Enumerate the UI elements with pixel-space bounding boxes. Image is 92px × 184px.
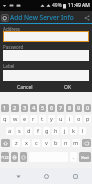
staticText: Next bbox=[81, 155, 89, 160]
staticText: w bbox=[13, 115, 18, 123]
button[interactable]: 7 bbox=[57, 104, 64, 112]
button[interactable]: p bbox=[84, 115, 91, 123]
button[interactable]: o bbox=[75, 115, 82, 123]
button[interactable]: s bbox=[16, 127, 23, 135]
staticText: 8 bbox=[68, 104, 72, 112]
staticText: 0 bbox=[86, 104, 90, 112]
staticText: y bbox=[50, 115, 53, 123]
staticText: Cancel bbox=[17, 84, 33, 91]
button[interactable]: Recents bbox=[64, 168, 86, 184]
button[interactable]: Home bbox=[35, 168, 57, 184]
staticText: OK bbox=[64, 84, 72, 91]
staticText: j bbox=[64, 127, 66, 135]
staticText: 49% bbox=[52, 2, 62, 9]
button[interactable]: 1 bbox=[1, 104, 9, 112]
staticText: i bbox=[69, 115, 71, 123]
button[interactable]: w bbox=[11, 115, 19, 123]
button[interactable]: 8 bbox=[66, 104, 73, 112]
button[interactable]: z bbox=[12, 139, 20, 147]
button[interactable]: g bbox=[43, 127, 50, 135]
button[interactable]: Share bbox=[82, 11, 92, 24]
button[interactable]: Back bbox=[7, 168, 29, 184]
button[interactable]: b bbox=[52, 139, 60, 147]
staticText: e bbox=[23, 115, 27, 123]
button[interactable]: Change language bbox=[11, 152, 18, 162]
button[interactable]: 9 bbox=[75, 104, 82, 112]
button[interactable]: 4 bbox=[30, 104, 37, 112]
button[interactable]: Back bbox=[0, 11, 10, 24]
staticText: 1 bbox=[3, 104, 7, 112]
button[interactable]: c bbox=[32, 139, 40, 147]
button[interactable]: k bbox=[70, 127, 77, 135]
staticText: k bbox=[72, 127, 75, 135]
button[interactable]: r bbox=[30, 115, 37, 123]
button[interactable]: 5 bbox=[39, 104, 46, 112]
button[interactable]: f bbox=[34, 127, 41, 135]
button[interactable]: l bbox=[79, 127, 86, 135]
staticText: g bbox=[45, 127, 49, 135]
staticText: s bbox=[18, 127, 21, 135]
staticText: d bbox=[27, 127, 31, 135]
button[interactable]: Backspace bbox=[82, 139, 91, 147]
staticText: 11:49 AM bbox=[68, 2, 90, 9]
staticText: f bbox=[37, 127, 39, 135]
button[interactable]: Cancel bbox=[3, 83, 46, 92]
staticText: a bbox=[8, 127, 12, 135]
staticText: m bbox=[73, 139, 79, 147]
staticText: z bbox=[15, 139, 18, 147]
button[interactable]: 6 bbox=[48, 104, 55, 112]
staticText: 2 bbox=[13, 104, 17, 112]
staticText: Add New Server Info bbox=[10, 13, 74, 22]
staticText: 7 bbox=[59, 104, 63, 112]
staticText: l bbox=[82, 127, 84, 135]
staticText: n bbox=[64, 139, 68, 147]
button[interactable]: OK bbox=[46, 83, 89, 92]
button[interactable]: d bbox=[25, 127, 32, 135]
staticText: 3 bbox=[23, 104, 27, 112]
button[interactable]: v bbox=[42, 139, 50, 147]
staticText: h bbox=[54, 127, 58, 135]
button[interactable]: ?123 bbox=[1, 152, 9, 162]
staticText: 9 bbox=[77, 104, 81, 112]
staticText: v bbox=[45, 139, 48, 147]
button[interactable]: 3 bbox=[21, 104, 28, 112]
staticText: o bbox=[77, 115, 81, 123]
button[interactable]: 0 bbox=[84, 104, 91, 112]
staticText: 4 bbox=[32, 104, 36, 112]
button[interactable]: m bbox=[72, 139, 80, 147]
staticText: p bbox=[86, 115, 90, 123]
button[interactable]: q bbox=[1, 115, 9, 123]
button[interactable]: i bbox=[66, 115, 73, 123]
button[interactable]: 2 bbox=[11, 104, 19, 112]
button[interactable]: . bbox=[70, 152, 77, 162]
staticText: ?123 bbox=[1, 155, 9, 160]
button[interactable]: e bbox=[21, 115, 28, 123]
staticText: q bbox=[3, 115, 7, 123]
staticText: c bbox=[35, 139, 38, 147]
staticText: r bbox=[32, 115, 35, 123]
staticText: t bbox=[41, 115, 44, 123]
button[interactable]: x bbox=[22, 139, 30, 147]
staticText: b bbox=[54, 139, 58, 147]
staticText: 6 bbox=[50, 104, 54, 112]
button[interactable]: Shift bbox=[1, 139, 10, 147]
button[interactable]: a bbox=[6, 127, 14, 135]
button[interactable]: n bbox=[62, 139, 70, 147]
staticText: . bbox=[73, 153, 75, 161]
staticText: Password bbox=[3, 44, 24, 50]
button[interactable]: t bbox=[39, 115, 46, 123]
button[interactable]: u bbox=[57, 115, 64, 123]
button[interactable]: Emoji bbox=[20, 152, 27, 162]
staticText: Address bbox=[3, 26, 21, 32]
staticText: 5 bbox=[41, 104, 45, 112]
staticText: Label bbox=[3, 63, 15, 69]
staticText: x bbox=[25, 139, 28, 147]
button[interactable]: j bbox=[61, 127, 68, 135]
button[interactable]: Next bbox=[79, 152, 91, 162]
button[interactable]: h bbox=[52, 127, 59, 135]
button[interactable]: y bbox=[48, 115, 55, 123]
